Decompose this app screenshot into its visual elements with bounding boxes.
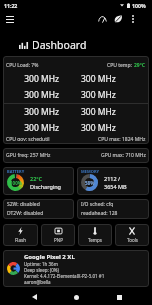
staticText: GPU max: 710 MHz — [101, 152, 146, 159]
staticText: Temps — [88, 237, 102, 243]
staticText: 300 MHz — [3, 89, 59, 101]
staticText: Dashboard — [32, 38, 87, 52]
staticText: I/O sched: cfq — [81, 201, 114, 208]
button[interactable]: Flash — [3, 224, 38, 246]
button[interactable]: Google Pixel 2 XL — [3, 250, 149, 287]
staticText: 300 MHz — [81, 89, 149, 101]
staticText: MEMORY — [81, 169, 100, 174]
staticText: 300 MHz — [81, 73, 149, 85]
staticText: Tools — [127, 237, 138, 243]
staticText: 58% — [85, 180, 95, 186]
staticText: aaron@bella — [24, 279, 51, 285]
button[interactable]: Recents — [110, 289, 128, 305]
button[interactable]: Back — [25, 289, 43, 305]
staticText: Deep sleep: (0%) — [24, 267, 59, 273]
staticText: 300 MHz — [3, 106, 59, 118]
staticText: 11:22 — [4, 2, 18, 9]
staticText: 2112 / — [104, 175, 121, 182]
button[interactable]: Home — [67, 289, 85, 305]
button[interactable]: More options — [126, 12, 140, 26]
staticText: CPU Load: 7% — [6, 62, 39, 69]
button[interactable]: Battery saver — [110, 11, 126, 27]
staticText: 100% — [10, 180, 22, 186]
button[interactable]: Tools — [115, 224, 149, 246]
staticText: Flash — [15, 237, 26, 243]
button[interactable]: Performance profile — [94, 11, 110, 27]
staticText: S2W: disabled — [7, 201, 40, 208]
staticText: 29°C — [134, 62, 146, 69]
staticText: 300 MHz — [3, 73, 59, 85]
staticText: readahead: 128 — [81, 210, 118, 217]
staticText: Google Pixel 2 XL — [24, 253, 75, 261]
staticText: CPU temp: — [107, 62, 134, 69]
staticText: DT2W: disabled — [7, 210, 44, 217]
staticText: Discharging — [30, 183, 61, 190]
staticText: 22°C — [30, 175, 43, 182]
staticText: 300 MHz — [3, 122, 59, 134]
staticText: PNP — [54, 237, 63, 243]
staticText: CPU gov: schedutil — [6, 136, 50, 141]
staticText: BATTERY — [7, 169, 25, 174]
staticText: Uptime: 1h 36m — [24, 261, 58, 267]
staticText: 100% — [132, 2, 146, 9]
staticText: 300 MHz — [81, 122, 149, 134]
staticText: CPU max: 1824 MHz — [98, 136, 146, 141]
button[interactable]: PNP — [41, 224, 75, 246]
staticText: GPU freq: 257 MHz — [6, 152, 51, 159]
staticText: Kernel: 4.4.172-ElementalX-P2-5.01 #1 — [24, 273, 105, 279]
button[interactable]: Temps — [78, 224, 112, 246]
button[interactable]: Menu — [6, 12, 20, 26]
staticText: 300 MHz — [81, 106, 149, 118]
staticText: 3654 MB — [104, 183, 127, 190]
